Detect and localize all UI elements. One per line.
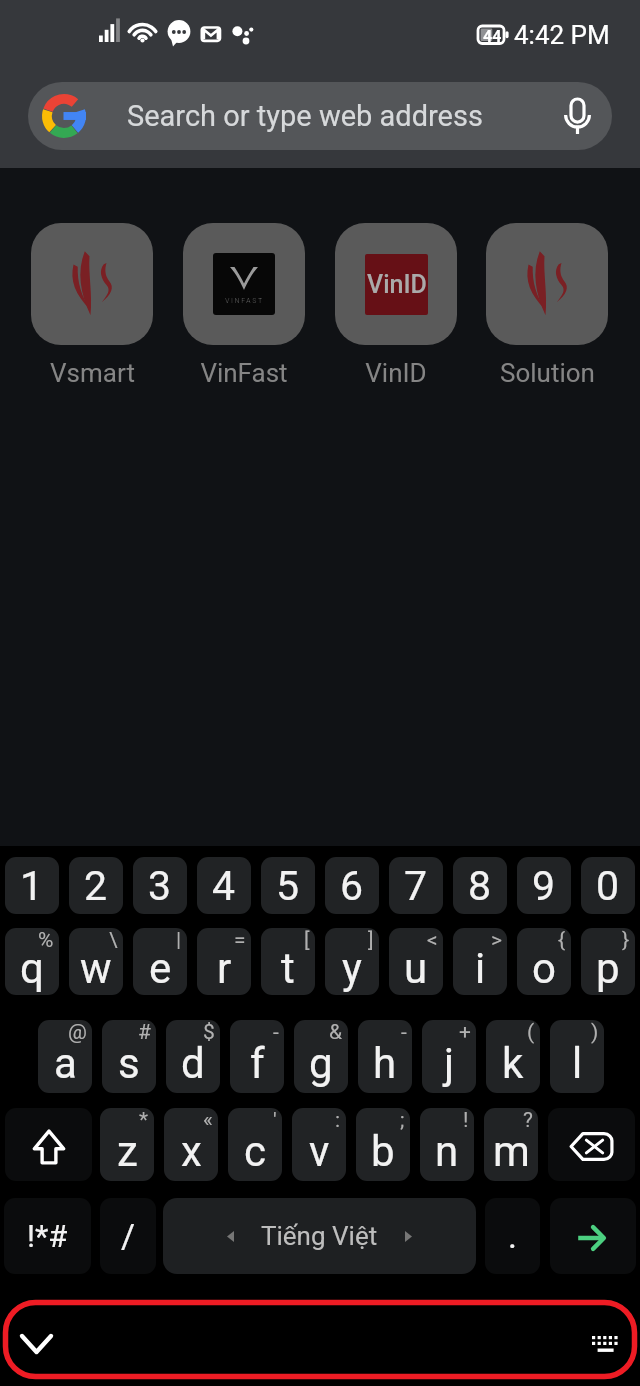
button[interactable]: Tiếng Việt <box>163 1198 476 1274</box>
button[interactable]: | <box>133 928 187 995</box>
staticText: e <box>149 944 172 993</box>
staticText: y <box>342 944 362 993</box>
button[interactable]: / <box>100 1198 156 1274</box>
staticText: % <box>38 928 54 953</box>
staticText: t <box>281 944 295 993</box>
staticText: ? <box>523 1108 533 1133</box>
staticText: ! <box>463 1108 469 1133</box>
button[interactable]: !*# <box>4 1198 91 1274</box>
staticText: VinFast <box>200 358 288 388</box>
staticText: 5 <box>276 862 300 910</box>
staticText: * <box>139 1108 149 1133</box>
staticText: r <box>217 944 232 993</box>
button[interactable]: Switch keyboard <box>576 1316 632 1372</box>
button[interactable]: = <box>197 928 251 995</box>
staticText: ' <box>273 1108 277 1133</box>
button[interactable]: > <box>453 928 507 995</box>
button[interactable]: - <box>230 1020 284 1093</box>
staticText: 2 <box>84 862 108 910</box>
button[interactable]: \ <box>69 928 123 995</box>
staticText: w <box>80 944 112 993</box>
button[interactable]: @ <box>38 1020 92 1093</box>
staticText: 4 <box>212 862 236 910</box>
button[interactable]: { <box>517 928 571 995</box>
staticText: [ <box>304 928 310 953</box>
staticText: !*# <box>27 1218 68 1254</box>
button[interactable]: : <box>292 1108 346 1181</box>
staticText: Tiếng Việt <box>261 1221 378 1251</box>
button[interactable]: ! <box>420 1108 474 1181</box>
staticText: = <box>234 928 246 953</box>
staticText: \ <box>109 928 118 953</box>
button[interactable]: 7 <box>389 857 443 914</box>
staticText: VINFAST <box>225 297 264 305</box>
button[interactable]: 0 <box>581 857 635 914</box>
staticText: 4:42 PM <box>514 20 610 50</box>
button[interactable]: # <box>102 1020 156 1093</box>
button[interactable]: Backspace <box>548 1108 635 1181</box>
staticText: q <box>20 944 44 993</box>
staticText: 1 <box>20 862 44 910</box>
staticText: | <box>176 928 182 953</box>
button[interactable]: ' <box>228 1108 282 1181</box>
staticText: VinID <box>365 358 427 388</box>
staticText: v <box>309 1127 330 1176</box>
staticText: d <box>181 1039 205 1088</box>
button[interactable]: 2 <box>69 857 123 914</box>
button[interactable]: 8 <box>453 857 507 914</box>
button[interactable]: ] <box>325 928 379 995</box>
staticText: Search or type web address <box>127 99 483 133</box>
staticText: ( <box>527 1020 535 1045</box>
staticText: Solution <box>500 358 595 388</box>
staticText: < <box>427 928 438 953</box>
button[interactable]: % <box>5 928 59 995</box>
staticText: # <box>138 1020 151 1045</box>
staticText: - <box>273 1020 279 1045</box>
button[interactable]: - <box>358 1020 412 1093</box>
button[interactable]: . <box>485 1198 540 1274</box>
staticText: VinID <box>367 270 427 299</box>
button[interactable]: 4 <box>197 857 251 914</box>
staticText: : <box>335 1108 341 1133</box>
button[interactable]: < <box>389 928 443 995</box>
staticText: z <box>117 1127 138 1176</box>
staticText: 7 <box>404 862 428 910</box>
staticText: @ <box>68 1020 87 1045</box>
button[interactable]: Solution <box>472 223 622 388</box>
button[interactable]: VINFAST <box>169 223 319 388</box>
staticText: Vsmart <box>50 358 135 388</box>
button[interactable]: & <box>294 1020 348 1093</box>
staticText: > <box>491 928 502 953</box>
button[interactable]: ; <box>356 1108 410 1181</box>
button[interactable]: « <box>164 1108 218 1181</box>
staticText: j <box>444 1039 455 1088</box>
button[interactable]: [ <box>261 928 315 995</box>
staticText: . <box>508 1216 517 1256</box>
other: Voice search <box>542 82 612 150</box>
staticText: s <box>118 1039 140 1088</box>
button[interactable]: VinID <box>321 223 471 388</box>
button[interactable]: Search or type web address <box>28 82 612 150</box>
button[interactable]: ? <box>484 1108 538 1181</box>
button[interactable]: ( <box>486 1020 540 1093</box>
staticText: ) <box>591 1020 599 1045</box>
button[interactable]: 1 <box>5 857 59 914</box>
staticText: / <box>121 1216 136 1256</box>
staticText: 8 <box>468 862 492 910</box>
button[interactable]: * <box>100 1108 154 1181</box>
staticText: m <box>493 1127 530 1176</box>
button[interactable]: Enter <box>550 1198 636 1274</box>
staticText: a <box>54 1039 77 1088</box>
button[interactable]: } <box>581 928 635 995</box>
button[interactable]: $ <box>166 1020 220 1093</box>
button[interactable]: + <box>422 1020 476 1093</box>
button[interactable]: Hide keyboard <box>8 1316 64 1372</box>
button[interactable]: 6 <box>325 857 379 914</box>
button[interactable]: ) <box>550 1020 604 1093</box>
button[interactable]: Vsmart <box>17 223 167 388</box>
button[interactable]: 5 <box>261 857 315 914</box>
button[interactable]: 3 <box>133 857 187 914</box>
button[interactable]: 9 <box>517 857 571 914</box>
staticText: u <box>404 944 428 993</box>
button[interactable]: Shift <box>5 1108 92 1181</box>
